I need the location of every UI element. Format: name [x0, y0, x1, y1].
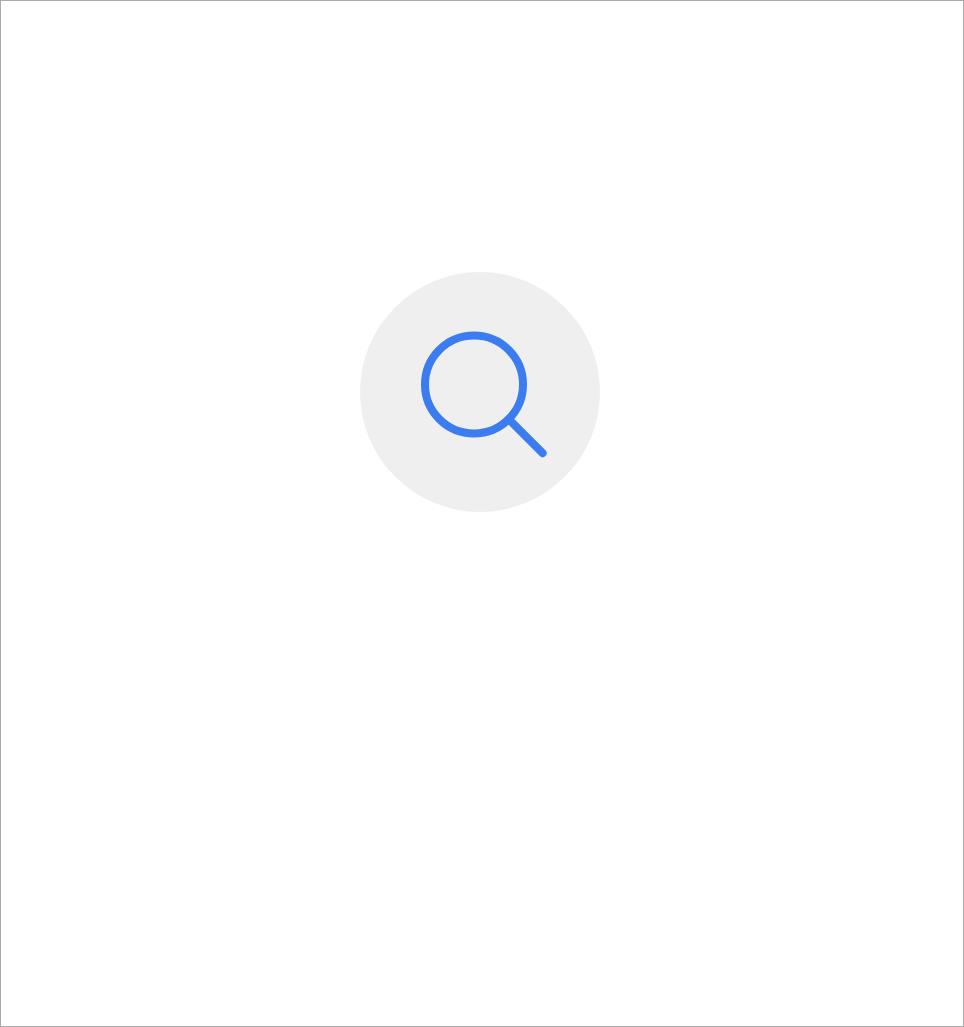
button[interactable]: Search: [360, 272, 600, 512]
